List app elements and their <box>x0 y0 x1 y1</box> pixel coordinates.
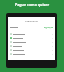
button[interactable]: Payment option <box>10 36 53 40</box>
staticText: R$ 29,90 <box>44 26 53 29</box>
button[interactable]: Payment option <box>10 52 53 56</box>
staticText: Pague como quiser <box>0 2 64 7</box>
button[interactable]: Payment option <box>10 48 53 52</box>
staticText: Pagamento <box>8 19 55 22</box>
button[interactable]: Payment option <box>10 40 53 44</box>
button[interactable]: Payment option <box>10 44 53 48</box>
button[interactable]: Payment option <box>10 32 53 36</box>
